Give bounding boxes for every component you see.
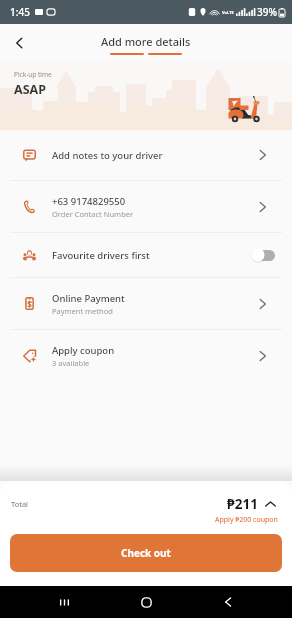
button[interactable]: Check out	[10, 534, 282, 572]
staticText: +63 9174829550	[52, 195, 126, 208]
button[interactable]: Apply coupon	[0, 330, 292, 381]
button[interactable]: Expand total	[264, 498, 276, 510]
staticText: Apply coupon	[52, 344, 115, 357]
staticText: Order Contact Number	[52, 209, 134, 219]
button[interactable]: Home	[128, 586, 164, 618]
staticText: 39%	[257, 5, 277, 19]
staticText: Pick-up time	[14, 70, 52, 79]
staticText: 1:45	[10, 5, 30, 19]
staticText: Add more details	[101, 34, 191, 49]
button[interactable]: +63 9174829550	[0, 181, 292, 232]
button[interactable]: Back	[5, 29, 33, 57]
button[interactable]: Favourite drivers first toggle	[251, 248, 275, 262]
staticText: VoLTE	[222, 10, 234, 15]
staticText: Total	[11, 499, 29, 509]
button[interactable]: Back	[210, 586, 246, 618]
button[interactable]: Add notes to your driver	[0, 130, 292, 180]
staticText: Favourite drivers first	[52, 249, 251, 262]
staticText: Check out	[121, 546, 171, 560]
staticText: 3 available	[52, 358, 90, 368]
staticText: Online Payment	[52, 292, 125, 305]
staticText: Apply ₱200 coupon	[215, 515, 278, 525]
staticText: Payment method	[52, 306, 113, 316]
button[interactable]: Online Payment	[0, 278, 292, 329]
button[interactable]: Favourite drivers first	[0, 233, 292, 277]
button[interactable]: Recents	[46, 586, 82, 618]
staticText: ₱211	[227, 495, 258, 513]
staticText: Add notes to your driver	[52, 149, 163, 162]
staticText: ASAP	[14, 81, 46, 98]
